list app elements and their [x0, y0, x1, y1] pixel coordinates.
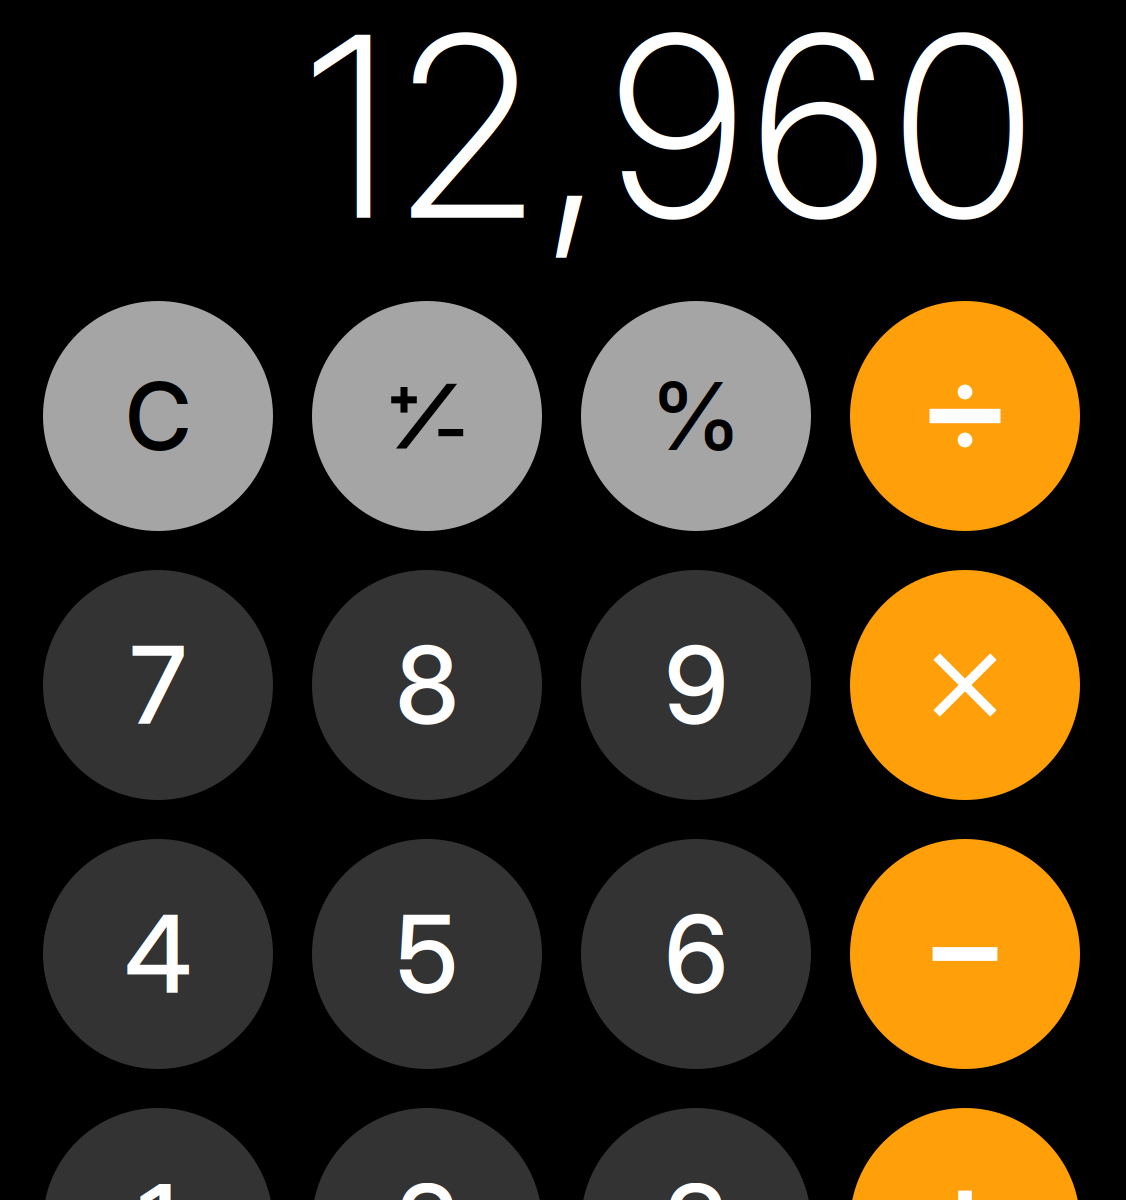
button[interactable]: 9	[581, 570, 811, 800]
button[interactable]: 7	[43, 570, 273, 800]
button[interactable]: 6	[581, 839, 811, 1069]
staticText: 4	[124, 889, 191, 1019]
staticText: 8	[395, 620, 458, 750]
button[interactable]: Change sign	[312, 301, 542, 531]
button[interactable]: 1	[43, 1108, 273, 1200]
button[interactable]: 3	[581, 1108, 811, 1200]
staticText: 6	[664, 889, 727, 1019]
staticText: 1	[138, 1158, 178, 1200]
staticText: C	[124, 359, 192, 472]
button[interactable]: Plus	[850, 1108, 1080, 1200]
button[interactable]: Divide	[850, 301, 1080, 531]
button[interactable]: Multiply	[850, 570, 1080, 800]
button[interactable]: Minus	[850, 839, 1080, 1069]
button[interactable]: 8	[312, 570, 542, 800]
staticText: 7	[130, 620, 186, 750]
staticText: %	[649, 359, 742, 472]
button[interactable]: 5	[312, 839, 542, 1069]
button[interactable]: C	[43, 301, 273, 531]
staticText: 9	[664, 620, 727, 750]
staticText: 5	[396, 889, 458, 1019]
button[interactable]: %	[581, 301, 811, 531]
button[interactable]: 2	[312, 1108, 542, 1200]
staticText: 12,960	[302, 0, 1037, 278]
button[interactable]: 4	[43, 839, 273, 1069]
staticText: 2	[396, 1158, 457, 1200]
staticText: 3	[663, 1158, 728, 1200]
